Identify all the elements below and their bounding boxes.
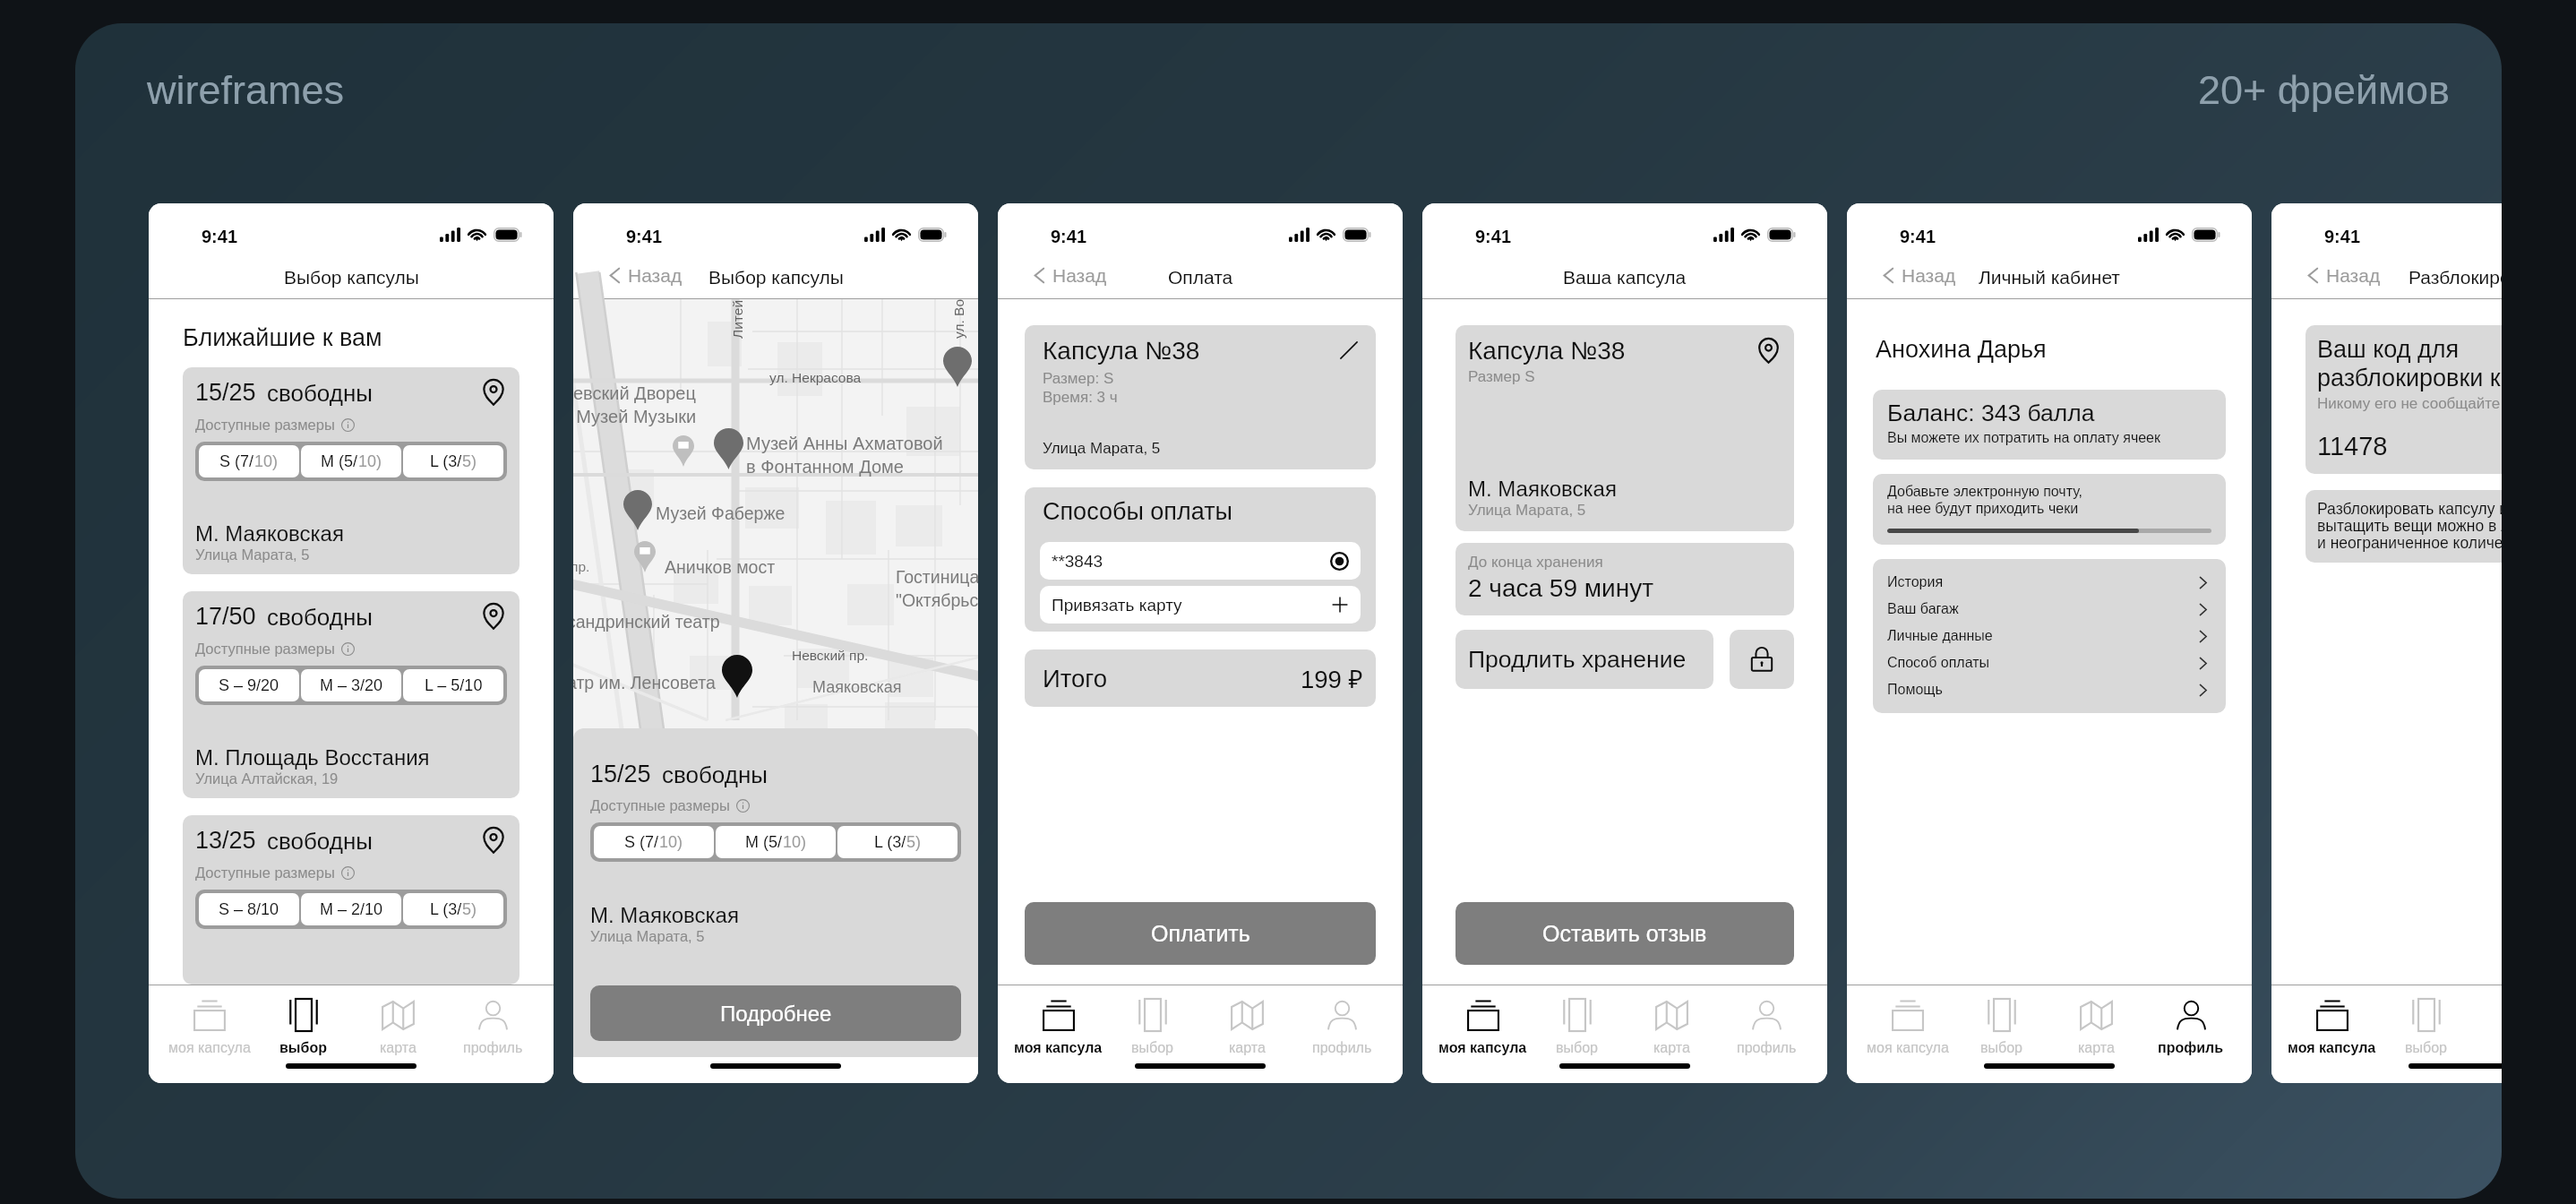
staticText: моя капсула [1438,1040,1527,1056]
button[interactable]: Назад [998,258,1118,293]
staticText: Назад [1902,265,1956,286]
button[interactable]: Назад [1847,258,1967,293]
staticText: 2 часа 59 минут [1468,574,1653,602]
staticText: 17/50 [195,603,256,630]
button[interactable]: профиль [1719,985,1814,1057]
button[interactable]: S – 8/10 [199,893,299,925]
staticText: выбор [1131,1040,1173,1056]
staticText: Ближайшие к вам [183,324,382,351]
button[interactable]: выбор [1954,985,2048,1057]
staticText: 5) [462,900,477,918]
staticText: 9:41 [1900,227,1936,246]
button[interactable]: L – 5/10 [403,669,503,701]
button[interactable]: Ваш багаж [1873,596,2226,623]
button[interactable]: карта [2473,985,2502,1057]
staticText: Доступные размеры [195,864,335,881]
staticText: свободны [267,828,373,854]
button[interactable]: L (3/ [403,445,503,477]
staticText: Гостиница "Октябрьская [896,567,978,610]
button[interactable]: моя капсула [1860,985,1954,1057]
staticText: 9:41 [1051,227,1087,246]
staticText: Личный кабинет [1979,267,2120,288]
button[interactable]: профиль [445,985,540,1057]
button[interactable]: Оплатить [1025,902,1376,965]
staticText: M – 2/10 [320,900,383,918]
staticText: профиль [463,1040,523,1056]
staticText: Доступные размеры [195,641,335,657]
button[interactable]: профиль [1294,985,1389,1057]
staticText: Оплата [1168,267,1233,288]
staticText: тевский Дворец - Музей Музыки [573,383,697,426]
button[interactable]: История [1873,569,2226,596]
staticText: Улица Алтайская, 19 [195,770,339,787]
staticText: Размер: S [1043,370,1114,387]
staticText: ул. Во [951,298,966,339]
button[interactable]: Показать на карте [1756,338,1782,364]
button[interactable]: Изменить [1338,340,1360,361]
button[interactable]: моя капсула [1436,985,1530,1057]
staticText: Способ оплаты [1887,655,1990,671]
button[interactable]: профиль [2143,985,2238,1057]
staticText: Разблокировать капсулу и достать вытащит… [2317,500,2502,552]
button[interactable]: выбор [2379,985,2473,1057]
staticText: S – 8/10 [219,900,279,918]
button[interactable]: Показать на карте [480,827,507,854]
button[interactable]: Назад [2271,258,2391,293]
button[interactable]: S (7/ [594,826,714,858]
staticText: карта [380,1040,416,1056]
button[interactable]: выбор [1530,985,1624,1057]
staticText: М. Маяковская [590,903,739,927]
button[interactable]: **3843 [1040,542,1361,580]
staticText: L – 5/10 [425,676,483,694]
button[interactable]: Способ оплаты [1873,649,2226,676]
button[interactable]: карта [350,985,445,1057]
staticText: 13/25 [195,827,256,854]
button[interactable]: Привязать карту [1040,586,1361,623]
button[interactable]: Назад [573,258,693,293]
button[interactable]: L (3/ [837,826,957,858]
staticText: Время: 3 ч [1043,389,1118,406]
staticText: Литей [730,299,745,339]
button[interactable]: Показать на карте [480,603,507,630]
staticText: История [1887,574,1944,590]
staticText: Улица Марата, 5 [195,546,310,563]
button[interactable]: M – 2/10 [301,893,401,925]
button[interactable]: 15/25 [183,367,519,574]
staticText: 10) [659,833,683,851]
button[interactable]: 17/50 [183,591,519,798]
staticText: профиль [1312,1040,1372,1056]
staticText: Анохина Дарья [1876,336,2047,363]
button[interactable]: Личные данные [1873,623,2226,649]
button[interactable]: M – 3/20 [301,669,401,701]
button[interactable]: выбор [1105,985,1199,1057]
button[interactable]: выбор [256,985,350,1057]
button[interactable]: Подробнее [590,985,961,1041]
staticText: Способы оплаты [1043,498,1232,525]
staticText: карта [1653,1040,1690,1056]
button[interactable]: Разблокировать [1730,630,1794,689]
button[interactable]: L (3/ [403,893,503,925]
button[interactable]: Помощь [1873,676,2226,703]
button[interactable]: карта [1199,985,1294,1057]
button[interactable]: моя капсула [1011,985,1105,1057]
staticText: M – 3/20 [320,676,383,694]
staticText: выбор [279,1040,327,1056]
button[interactable]: 13/25 [183,815,519,985]
button[interactable]: карта [2048,985,2143,1057]
staticText: Улица Марата, 5 [1468,502,1586,519]
button[interactable]: Показать на карте [480,379,507,406]
button[interactable]: моя капсула [162,985,256,1057]
button[interactable]: M (5/ [301,445,401,477]
button[interactable]: карта [1624,985,1719,1057]
button[interactable]: M (5/ [716,826,836,858]
button[interactable]: Продлить хранение [1455,630,1713,689]
staticText: карта [2078,1040,2115,1056]
staticText: 15/25 [590,761,651,787]
staticText: Ваш код для разблокировки капсулы [2317,336,2502,391]
staticText: Капсула №38 [1043,337,1200,365]
button[interactable]: S (7/ [199,445,299,477]
button[interactable]: S – 9/20 [199,669,299,701]
button[interactable]: моя капсула [2285,985,2379,1057]
button[interactable]: Оставить отзыв [1455,902,1794,965]
